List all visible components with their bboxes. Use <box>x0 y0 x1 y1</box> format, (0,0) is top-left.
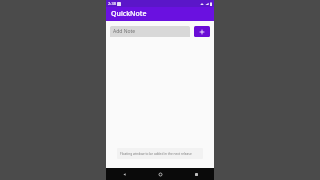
staticText: QuickNote <box>111 9 147 19</box>
button[interactable]: Floating window to be added in the next … <box>117 148 203 159</box>
button[interactable]: Recent apps <box>178 168 214 180</box>
button[interactable]: Add Note <box>110 26 190 37</box>
staticText: Add Note <box>113 28 136 35</box>
button[interactable]: Home <box>142 168 178 180</box>
staticText: 2:38 <box>108 1 116 6</box>
button[interactable]: Add note <box>194 26 210 37</box>
button[interactable]: Back <box>106 168 142 180</box>
staticText: Floating window to be added in the next … <box>120 152 192 156</box>
